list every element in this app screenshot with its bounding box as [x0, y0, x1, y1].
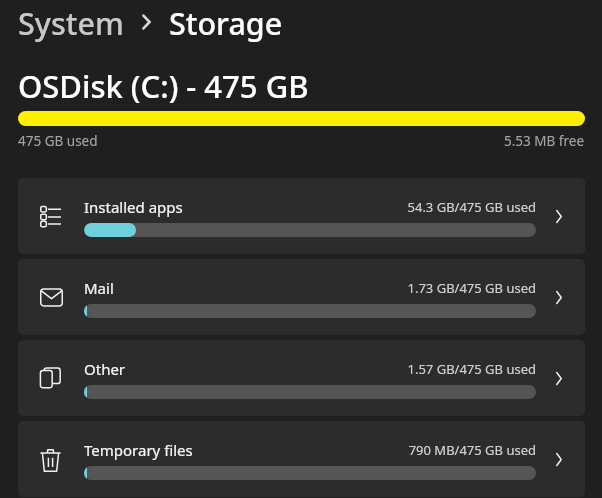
staticText: 1.73 GB/475 GB used — [18, 279, 536, 297]
button[interactable]: Mail icon — [18, 259, 585, 335]
button[interactable]: Installed apps icon — [18, 178, 585, 254]
button[interactable]: Temporary files icon — [18, 421, 585, 497]
staticText: 54.3 GB/475 GB used — [18, 198, 536, 216]
other: Breadcrumb separator — [141, 15, 152, 29]
other: Open Temporary files — [545, 445, 573, 473]
staticText: 5.53 MB free — [504, 132, 585, 150]
other: Open Installed apps — [545, 202, 573, 230]
staticText: Temporary files — [84, 440, 193, 460]
staticText: Other — [84, 359, 126, 379]
staticText: 475 GB used — [18, 132, 98, 150]
other: Open Other — [545, 364, 573, 392]
staticText: OSDisk (C:) - 475 GB — [18, 65, 309, 107]
button[interactable]: Storage — [169, 2, 283, 44]
other: Mail icon — [40, 287, 63, 308]
staticText: 790 MB/475 GB used — [18, 441, 536, 459]
staticText: Installed apps — [84, 197, 183, 217]
staticText: Mail — [84, 278, 114, 298]
other: Temporary files icon — [40, 449, 61, 472]
staticText: 1.57 GB/475 GB used — [18, 360, 536, 378]
button[interactable]: Other icon — [18, 340, 585, 416]
other: Installed apps icon — [40, 205, 61, 226]
other: Open Mail — [545, 283, 573, 311]
button[interactable]: System — [18, 2, 124, 44]
other: Other icon — [40, 367, 61, 388]
